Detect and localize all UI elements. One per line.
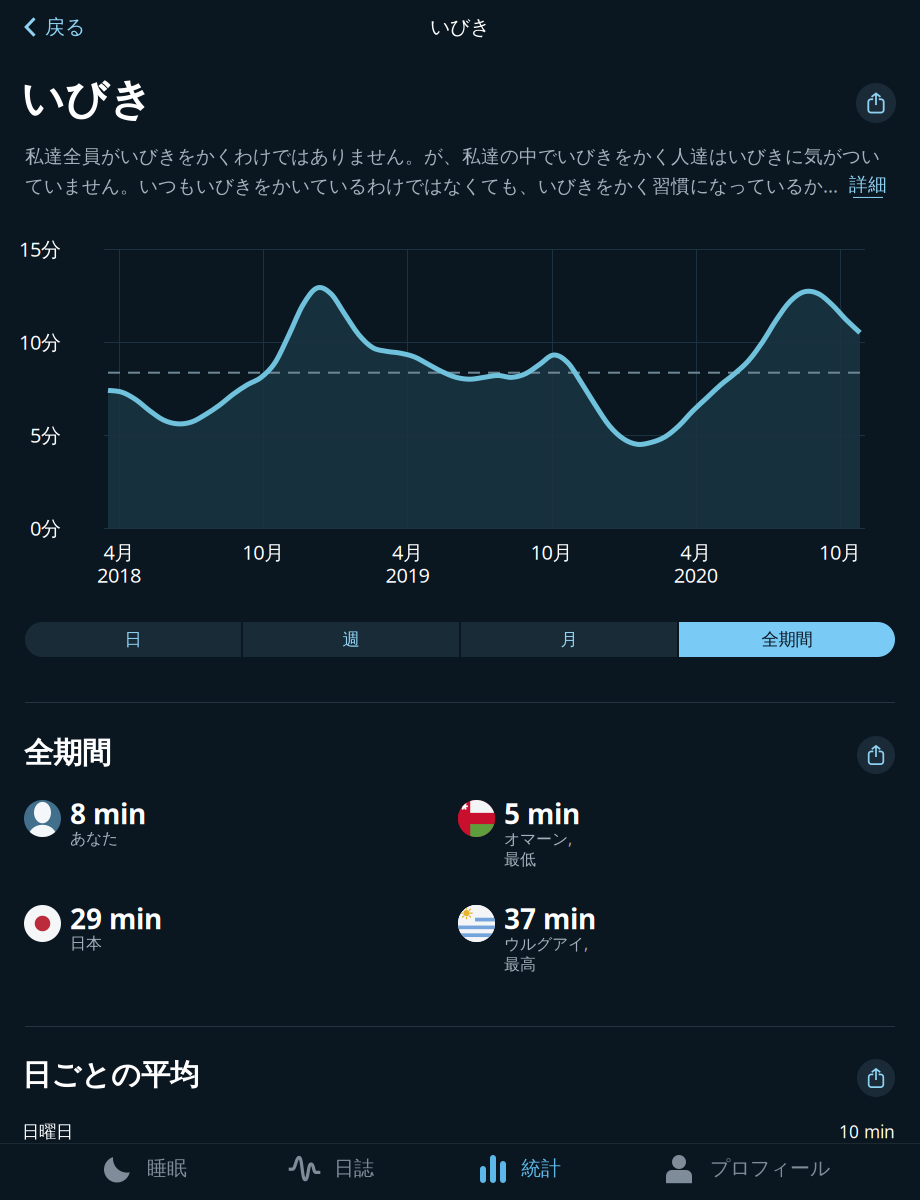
staticText: ていません。いつもいびきをかいているわけではなくても、いびきをかく習慣になってい…	[25, 173, 838, 198]
staticText: プロフィール	[710, 1156, 830, 1181]
button[interactable]: 日誌	[287, 1143, 462, 1200]
staticText: 日	[124, 629, 141, 650]
staticText: 統計	[521, 1156, 561, 1181]
staticText: 日曜日	[22, 1121, 73, 1142]
staticText: 日ごとの平均	[22, 1057, 199, 1093]
staticText: 日誌	[334, 1156, 374, 1181]
staticText: 10月	[819, 539, 861, 565]
staticText: いびき	[21, 73, 153, 125]
staticText: 37 min	[504, 900, 596, 937]
staticText: 詳細	[849, 173, 887, 196]
staticText: 10月	[531, 539, 573, 565]
staticText: 0分	[30, 515, 61, 541]
staticText: 日本	[70, 934, 102, 953]
staticText: 戻る	[45, 15, 85, 39]
button[interactable]: 全期間	[679, 622, 895, 657]
button[interactable]: 共有	[857, 736, 895, 774]
staticText: 10月	[242, 539, 284, 565]
button[interactable]: 共有	[856, 83, 896, 123]
staticText: 10 min	[839, 1120, 895, 1143]
button[interactable]: 統計	[480, 1143, 655, 1200]
staticText: 4月	[392, 539, 423, 565]
staticText: 5分	[30, 422, 61, 448]
staticText: 4月	[680, 539, 711, 565]
staticText: 最高	[504, 955, 536, 974]
staticText: 私達全員がいびきをかくわけではありません。が、私達の中でいびきをかく人達はいびき…	[25, 145, 880, 168]
staticText: 4月	[103, 539, 134, 565]
button[interactable]: 月	[461, 622, 677, 657]
staticText: 8 min	[70, 795, 146, 832]
staticText: 月	[560, 629, 577, 650]
button[interactable]: 詳細	[849, 173, 887, 198]
staticText: オマーン,	[504, 828, 572, 849]
staticText: ウルグアイ,	[504, 933, 588, 954]
button[interactable]: 週	[243, 622, 459, 657]
staticText: 2018	[97, 562, 141, 588]
button[interactable]: 戻る	[0, 0, 103, 54]
staticText: 10分	[19, 329, 61, 355]
staticText: 睡眠	[147, 1156, 187, 1181]
staticText: 15分	[19, 236, 61, 262]
staticText: 全期間	[761, 629, 812, 650]
button[interactable]: 日	[25, 622, 241, 657]
button[interactable]: 睡眠	[104, 1143, 274, 1200]
staticText: あなた	[70, 829, 118, 848]
staticText: 全期間	[24, 735, 111, 771]
staticText: 29 min	[70, 900, 162, 937]
staticText: 最低	[504, 850, 536, 869]
staticText: 週	[342, 629, 359, 650]
staticText: いびき	[430, 15, 490, 39]
staticText: 2020	[674, 562, 718, 588]
button[interactable]: 共有	[857, 1059, 895, 1097]
staticText: 2019	[385, 562, 429, 588]
button[interactable]: プロフィール	[666, 1143, 866, 1200]
staticText: 5 min	[504, 795, 580, 832]
